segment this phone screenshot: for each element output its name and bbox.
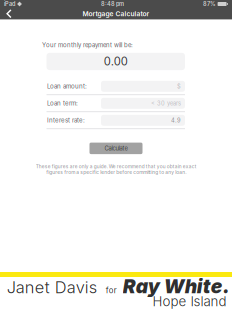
button[interactable]: Calculate [89, 143, 142, 154]
staticText: Calculate [104, 145, 127, 152]
staticText: iPad [4, 1, 15, 7]
staticText: < 30 years [151, 100, 181, 107]
staticText: Your monthly repayment will be: [42, 41, 133, 49]
staticText: for [106, 286, 117, 295]
staticText: $ [177, 83, 181, 90]
staticText: Loan term: [47, 100, 78, 107]
staticText: 8:48 pm [101, 1, 124, 7]
staticText: Hope Island [152, 293, 226, 309]
staticText: 87% [203, 1, 216, 7]
staticText: These figures are only a guide. We recom… [35, 164, 196, 175]
staticText: Loan amount: [47, 83, 87, 90]
staticText: 0.00 [104, 55, 128, 68]
staticText: 4.9 [171, 117, 181, 124]
staticText: Interest rate: [47, 117, 85, 124]
staticText: Janet Davis [7, 277, 97, 297]
staticText: Mortgage Calculator [82, 10, 149, 18]
button[interactable]: Back [0, 8, 18, 19]
staticText: Ray White. [123, 275, 230, 298]
